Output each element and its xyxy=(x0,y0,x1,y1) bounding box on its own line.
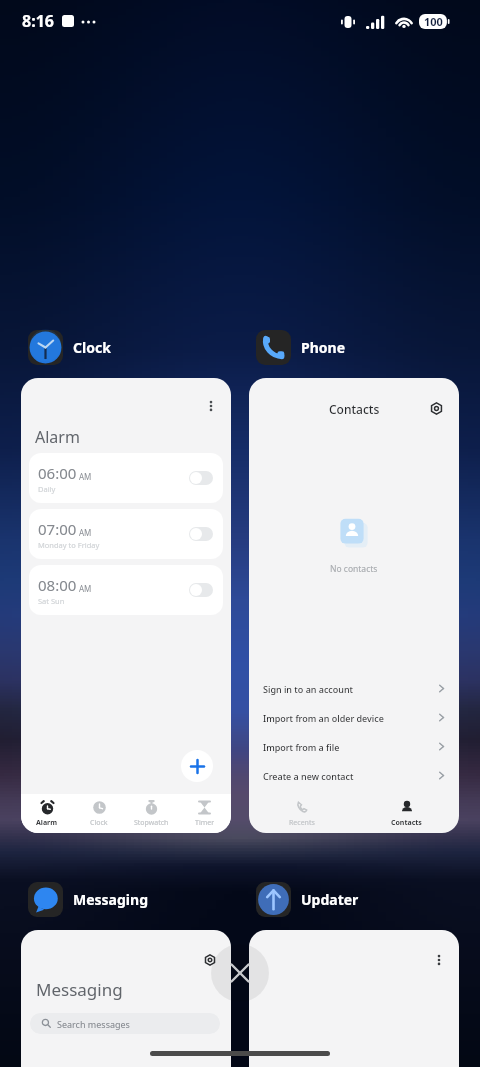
button[interactable]: Toggle alarm xyxy=(189,583,213,597)
button[interactable]: Sign in to an account xyxy=(249,674,459,703)
button[interactable]: Timer xyxy=(178,794,231,833)
button[interactable]: Settings xyxy=(200,950,220,970)
button[interactable]: More options xyxy=(249,930,459,1067)
button[interactable]: Contacts xyxy=(354,794,459,833)
staticText: Daily xyxy=(38,484,56,494)
staticText: 07:00 xyxy=(38,519,77,539)
button[interactable]: Add alarm xyxy=(181,750,213,782)
button[interactable]: Stopwatch xyxy=(125,794,178,833)
button[interactable]: Recents xyxy=(249,794,354,833)
staticText: Sign in to an account xyxy=(263,683,437,695)
staticText: Clock xyxy=(73,338,111,357)
staticText: AM xyxy=(79,527,92,538)
button[interactable]: Phone xyxy=(249,330,346,365)
staticText: Messaging xyxy=(73,890,148,909)
button[interactable]: Alarm xyxy=(21,794,73,833)
button[interactable]: Messaging xyxy=(21,882,148,917)
button[interactable]: Import from an older device xyxy=(249,703,459,732)
staticText: Recents xyxy=(289,818,315,828)
staticText: Import from an older device xyxy=(263,712,437,724)
staticText: 8:16 xyxy=(22,10,54,32)
button[interactable]: Settings xyxy=(21,930,231,1067)
button[interactable]: 06:00 xyxy=(29,453,223,503)
staticText: Contacts xyxy=(329,401,380,417)
button[interactable]: 07:00 xyxy=(29,509,223,559)
staticText: Contacts xyxy=(391,818,422,828)
staticText: Import from a file xyxy=(263,741,437,753)
button[interactable]: Updater xyxy=(249,882,359,917)
button[interactable]: More options xyxy=(201,396,221,416)
button[interactable]: Settings xyxy=(426,398,446,418)
staticText: Sat Sun xyxy=(38,596,65,606)
button[interactable]: More options xyxy=(21,378,231,833)
staticText: 06:00 xyxy=(38,463,77,483)
staticText: Messaging xyxy=(36,978,123,1001)
button[interactable]: Import from a file xyxy=(249,732,459,761)
staticText: Monday to Friday xyxy=(38,540,100,550)
staticText: AM xyxy=(79,583,92,594)
staticText: Updater xyxy=(301,890,359,909)
button[interactable]: Toggle alarm xyxy=(189,527,213,541)
staticText: 100 xyxy=(424,14,443,29)
staticText: 08:00 xyxy=(38,575,77,595)
staticText: Alarm xyxy=(35,426,80,448)
button[interactable]: Close all xyxy=(211,944,269,1002)
button[interactable]: Contacts xyxy=(249,378,459,833)
button[interactable]: Toggle alarm xyxy=(189,471,213,485)
staticText: No contacts xyxy=(330,563,378,575)
staticText: Search messages xyxy=(57,1018,130,1030)
button[interactable]: 08:00 xyxy=(29,565,223,615)
button[interactable]: Clock xyxy=(73,794,125,833)
staticText: AM xyxy=(79,471,92,482)
staticText: Create a new contact xyxy=(263,770,437,782)
button[interactable]: Clock xyxy=(21,330,111,365)
staticText: Alarm xyxy=(36,818,58,828)
button[interactable]: Create a new contact xyxy=(249,761,459,790)
staticText: Timer xyxy=(195,818,215,828)
staticText: Clock xyxy=(90,818,108,828)
button[interactable]: Search messages xyxy=(30,1013,220,1034)
button[interactable]: More options xyxy=(429,950,449,970)
staticText: Phone xyxy=(301,338,346,357)
staticText: Stopwatch xyxy=(134,818,169,828)
